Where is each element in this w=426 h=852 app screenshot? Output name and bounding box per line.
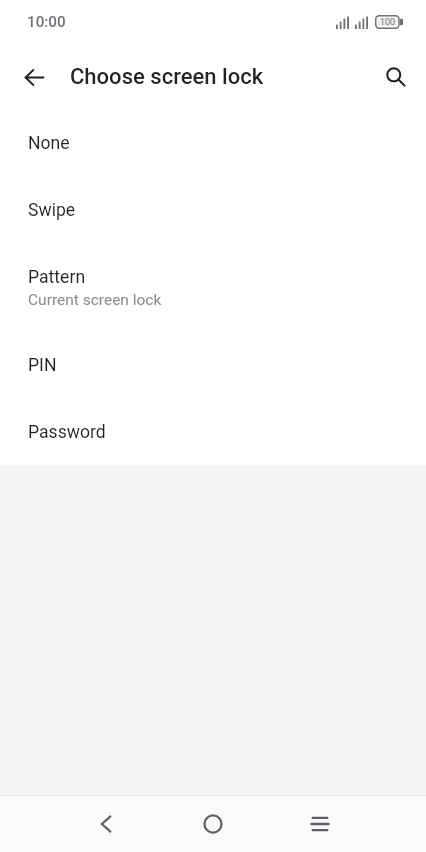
staticText: 10:00 (27, 13, 66, 31)
button[interactable]: Back (77, 796, 135, 852)
staticText: 100 (380, 17, 396, 28)
staticText: Password (28, 422, 106, 443)
button[interactable]: Swipe (0, 177, 426, 244)
staticText: Swipe (28, 200, 76, 221)
button[interactable]: None (0, 110, 426, 177)
staticText: PIN (28, 355, 57, 376)
staticText: Choose screen lock (70, 64, 264, 90)
staticText: Pattern (28, 267, 86, 288)
button[interactable]: PIN (0, 332, 426, 399)
button[interactable]: Back (12, 55, 56, 99)
staticText: None (28, 133, 70, 154)
button[interactable]: Search (372, 55, 416, 99)
button[interactable]: Password (0, 399, 426, 465)
staticText: Current screen lock (28, 291, 162, 309)
button[interactable]: Pattern (0, 244, 426, 332)
button[interactable]: Home (184, 796, 242, 852)
button[interactable]: Recent apps (291, 796, 349, 852)
